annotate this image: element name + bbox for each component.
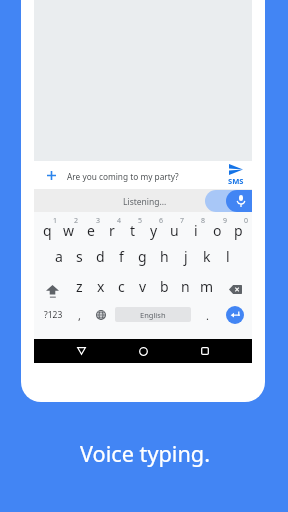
staticText: 7 (180, 216, 185, 226)
staticText: Listening... (123, 196, 167, 208)
button[interactable]: 0 (228, 212, 249, 238)
button[interactable]: . (197, 302, 218, 328)
button[interactable]: c (111, 273, 132, 299)
button[interactable]: l (217, 243, 238, 269)
button[interactable]: a (48, 243, 69, 269)
button[interactable]: English (115, 307, 191, 322)
button[interactable]: Change language (90, 302, 111, 328)
button[interactable]: 4 (101, 212, 122, 238)
button[interactable]: Backspace (217, 273, 249, 299)
button[interactable]: Add attachment (38, 161, 64, 189)
button[interactable]: d (90, 243, 111, 269)
staticText: Are you coming to my party? (67, 171, 179, 182)
button[interactable]: Home (128, 339, 158, 363)
button[interactable]: 2 (58, 212, 79, 238)
staticText: Voice typing. (80, 439, 210, 469)
button[interactable]: f (111, 243, 132, 269)
staticText: o (213, 221, 222, 240)
staticText: SMS (228, 176, 244, 186)
staticText: b (160, 277, 169, 296)
button[interactable]: j (175, 243, 196, 269)
button[interactable]: m (196, 273, 217, 299)
staticText: r (109, 221, 115, 240)
staticText: m (200, 277, 214, 296)
staticText: a (55, 247, 63, 266)
staticText: 0 (244, 216, 249, 226)
staticText: f (119, 247, 124, 266)
button[interactable]: x (90, 273, 111, 299)
staticText: q (43, 221, 52, 240)
button[interactable]: 6 (143, 212, 164, 238)
button[interactable]: v (132, 273, 153, 299)
staticText: y (150, 221, 158, 240)
button[interactable]: Shift (37, 273, 69, 299)
button[interactable]: 7 (164, 212, 185, 238)
button[interactable]: k (196, 243, 217, 269)
button[interactable]: 1 (37, 212, 58, 238)
staticText: ?123 (44, 309, 63, 321)
staticText: x (97, 277, 105, 296)
staticText: t (130, 221, 136, 240)
staticText: g (138, 247, 147, 266)
staticText: 4 (117, 216, 122, 226)
staticText: English (140, 310, 166, 320)
button[interactable]: 8 (185, 212, 206, 238)
button[interactable]: 5 (122, 212, 143, 238)
staticText: . (206, 308, 209, 323)
staticText: , (78, 308, 81, 323)
button[interactable]: Back (66, 339, 96, 363)
staticText: s (76, 247, 83, 266)
staticText: d (96, 247, 105, 266)
staticText: u (170, 221, 179, 240)
staticText: 5 (138, 216, 143, 226)
button[interactable]: n (175, 273, 196, 299)
staticText: c (118, 277, 125, 296)
staticText: z (76, 277, 83, 296)
button[interactable]: Send SMS (222, 161, 252, 189)
button[interactable]: s (69, 243, 90, 269)
staticText: v (139, 277, 147, 296)
staticText: e (87, 221, 95, 240)
staticText: 9 (223, 216, 228, 226)
staticText: 8 (201, 216, 206, 226)
staticText: 1 (53, 216, 58, 226)
button[interactable]: g (132, 243, 153, 269)
staticText: k (203, 247, 211, 266)
button[interactable]: b (154, 273, 175, 299)
staticText: 2 (74, 216, 79, 226)
button[interactable]: Enter (217, 302, 249, 328)
staticText: 6 (159, 216, 164, 226)
staticText: i (194, 221, 198, 240)
staticText: n (181, 277, 190, 296)
button[interactable]: ?123 (37, 302, 69, 328)
button[interactable]: z (69, 273, 90, 299)
button[interactable]: 9 (207, 212, 228, 238)
button[interactable]: , (69, 302, 90, 328)
staticText: p (234, 221, 243, 240)
button[interactable]: h (154, 243, 175, 269)
staticText: j (184, 247, 188, 266)
staticText: h (160, 247, 169, 266)
staticText: 3 (96, 216, 101, 226)
staticText: w (63, 221, 75, 240)
staticText: l (226, 247, 230, 266)
button[interactable]: 3 (80, 212, 101, 238)
button[interactable]: Recent apps (190, 339, 220, 363)
button[interactable]: Voice input (205, 190, 252, 212)
